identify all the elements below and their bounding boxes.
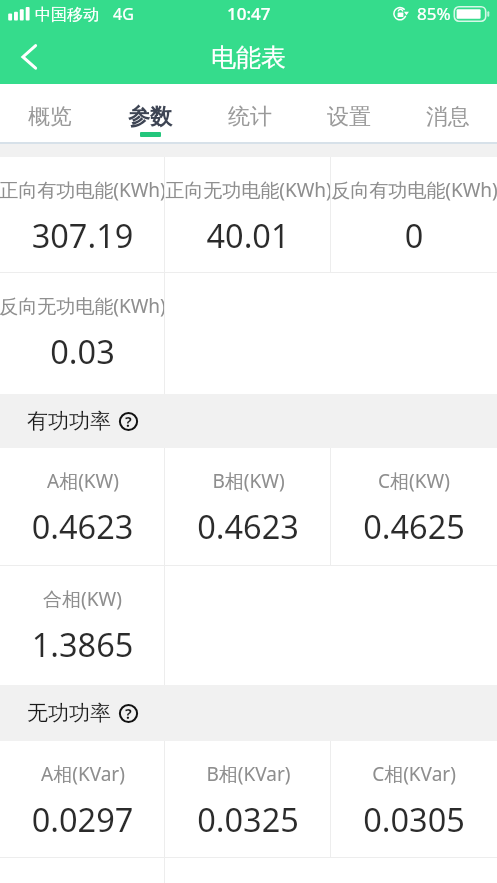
button[interactable]: 设置 — [299, 84, 398, 142]
staticText: ? — [125, 704, 132, 723]
button[interactable]: B相(KVar) — [165, 741, 331, 857]
staticText: 中国移动 — [35, 5, 99, 25]
button[interactable]: 反向有功电能(KWh) — [331, 157, 497, 272]
button[interactable]: Help about 无功功率 — [119, 704, 138, 723]
staticText: 0.0325 — [165, 797, 331, 841]
staticText: 设置 — [327, 103, 371, 131]
button[interactable]: 参数 — [100, 84, 200, 142]
staticText: 正向无功电能(KWh) — [165, 177, 332, 203]
staticText: 85% — [417, 2, 451, 25]
staticText: 电能表 — [211, 42, 286, 73]
button[interactable]: 合相(KW) — [0, 566, 165, 685]
staticText: B相(KVar) — [206, 761, 291, 787]
staticText: 0.03 — [0, 329, 165, 373]
button[interactable]: Back — [8, 30, 52, 84]
staticText: 0.4623 — [0, 504, 165, 548]
staticText: C相(KVar) — [372, 761, 456, 787]
staticText: 4G — [113, 3, 134, 25]
staticText: 合相(KW) — [43, 586, 122, 612]
button[interactable]: 正向无功电能(KWh) — [165, 157, 331, 272]
staticText: 307.19 — [0, 213, 165, 257]
staticText: 统计 — [228, 103, 272, 131]
staticText: 0.4625 — [331, 504, 497, 548]
button[interactable]: A相(KW) — [0, 448, 165, 565]
button[interactable]: 统计 — [200, 84, 299, 142]
staticText: 反向无功电能(KWh) — [0, 293, 166, 319]
button[interactable]: 反向无功电能(KWh) — [0, 273, 165, 394]
staticText: 0.0297 — [0, 797, 165, 841]
staticText: C相(KW) — [378, 468, 450, 494]
staticText: 无功功率 — [27, 700, 111, 726]
staticText: 有功功率 — [27, 408, 111, 434]
staticText: 0.4623 — [165, 504, 331, 548]
staticText: 参数 — [128, 103, 172, 131]
button[interactable]: C相(KVar) — [331, 741, 497, 857]
staticText: 0 — [331, 213, 497, 257]
button[interactable]: 正向有功电能(KWh) — [0, 157, 165, 272]
button[interactable]: Help about 有功功率 — [119, 412, 138, 431]
staticText: 1.3865 — [0, 622, 165, 666]
button[interactable]: 概览 — [0, 84, 100, 142]
staticText: A相(KVar) — [41, 761, 125, 787]
button[interactable]: A相(KVar) — [0, 741, 165, 857]
button[interactable]: C相(KW) — [331, 448, 497, 565]
staticText: 10:47 — [227, 2, 271, 25]
staticText: 消息 — [426, 103, 470, 131]
staticText: ? — [125, 412, 132, 431]
staticText: 正向有功电能(KWh) — [0, 177, 166, 203]
button[interactable]: B相(KW) — [165, 448, 331, 565]
staticText: 40.01 — [165, 213, 331, 257]
staticText: 概览 — [28, 103, 72, 131]
button[interactable]: 消息 — [398, 84, 497, 142]
staticText: 0.0305 — [331, 797, 497, 841]
staticText: A相(KW) — [47, 468, 119, 494]
staticText: 反向有功电能(KWh) — [331, 177, 497, 203]
staticText: B相(KW) — [212, 468, 285, 494]
